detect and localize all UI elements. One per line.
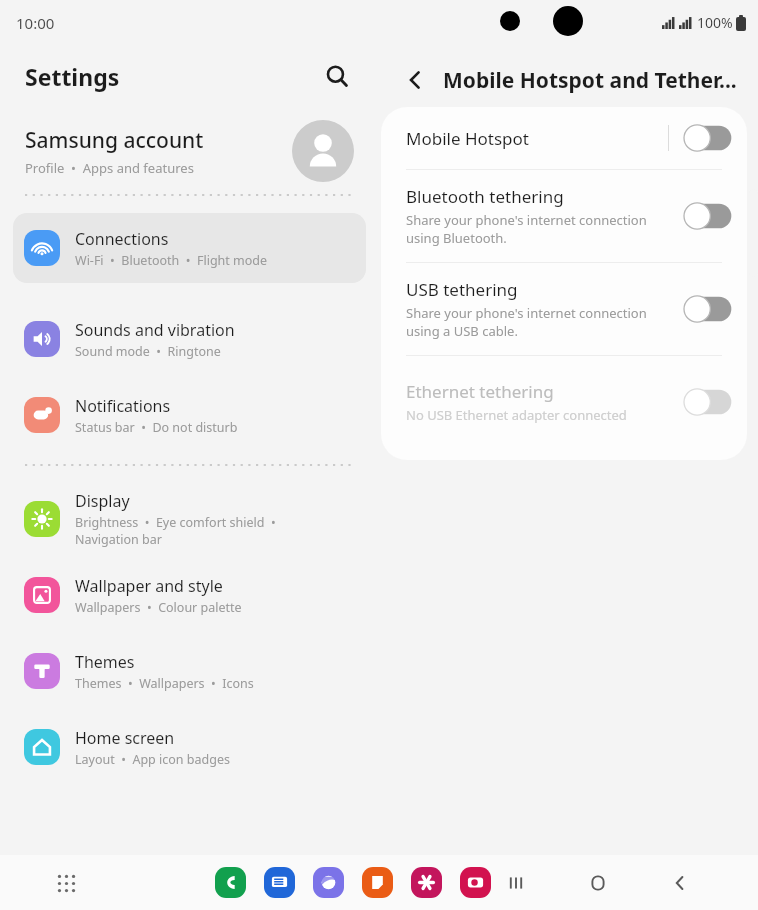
button[interactable]: note <box>362 867 393 898</box>
button[interactable]: Back <box>393 58 437 102</box>
button[interactable]: Toggle <box>683 202 733 230</box>
button[interactable]: Mobile Hotspot <box>381 107 747 169</box>
button[interactable]: Ethernet tethering <box>381 356 747 448</box>
staticText: 10:00 <box>16 13 55 33</box>
button[interactable]: back <box>660 863 700 903</box>
button[interactable]: Wallpaper and style <box>0 557 379 633</box>
staticText: Notifications <box>75 395 171 417</box>
staticText: Mobile Hotspot and Tether... <box>443 66 737 95</box>
staticText: Brightness • Eye comfort shield • Naviga… <box>75 514 276 548</box>
button[interactable]: Samsung account <box>0 107 379 195</box>
button[interactable]: Sounds and vibration <box>0 301 379 377</box>
button[interactable]: Notifications <box>0 377 379 453</box>
button[interactable]: Search <box>317 56 357 96</box>
button[interactable]: Toggle <box>683 295 733 323</box>
staticText: Settings <box>25 61 120 92</box>
staticText: Wallpaper and style <box>75 575 223 597</box>
button[interactable]: Home screen <box>0 709 379 785</box>
staticText: Themes • Wallpapers • Icons <box>75 675 254 692</box>
staticText: Wallpapers • Colour palette <box>75 599 242 616</box>
staticText: Wi-Fi • Bluetooth • Flight mode <box>75 252 268 269</box>
button[interactable]: Toggle <box>683 388 733 416</box>
button[interactable]: Connections <box>13 213 366 283</box>
staticText: Display <box>75 490 130 512</box>
staticText: Sounds and vibration <box>75 319 235 341</box>
button[interactable]: msg <box>264 867 295 898</box>
button[interactable]: Display <box>0 481 379 557</box>
staticText: Profile • Apps and features <box>25 159 194 177</box>
button[interactable]: browser <box>313 867 344 898</box>
button[interactable]: store <box>411 867 442 898</box>
button[interactable]: Bluetooth tethering <box>381 170 747 262</box>
button[interactable]: recents <box>496 863 536 903</box>
button[interactable]: phone <box>215 867 246 898</box>
staticText: Bluetooth tethering <box>406 185 564 208</box>
staticText: Share your phone's internet connection u… <box>406 304 647 340</box>
staticText: Layout • App icon badges <box>75 751 230 768</box>
staticText: USB tethering <box>406 278 518 301</box>
staticText: Themes <box>75 651 135 673</box>
staticText: Samsung account <box>25 126 204 155</box>
button[interactable]: Apps <box>48 865 84 901</box>
staticText: No USB Ethernet adapter connected <box>406 406 627 424</box>
staticText: 100% <box>697 13 733 32</box>
button[interactable]: USB tethering <box>381 263 747 355</box>
staticText: Ethernet tethering <box>406 380 554 403</box>
button[interactable]: cam <box>460 867 491 898</box>
staticText: Share your phone's internet connection u… <box>406 211 647 247</box>
staticText: Mobile Hotspot <box>406 127 668 150</box>
button[interactable]: Toggle <box>683 124 733 152</box>
button[interactable]: home <box>578 863 618 903</box>
staticText: Connections <box>75 228 169 250</box>
button[interactable]: Themes <box>0 633 379 709</box>
staticText: Sound mode • Ringtone <box>75 343 221 360</box>
staticText: Status bar • Do not disturb <box>75 419 238 436</box>
staticText: Home screen <box>75 727 175 749</box>
